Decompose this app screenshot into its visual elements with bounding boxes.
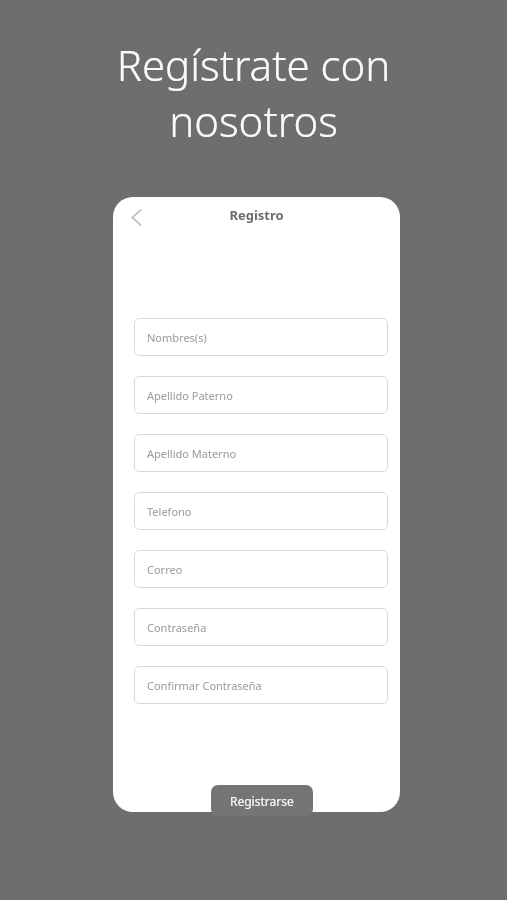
button[interactable]: Apellido Paterno [134,376,388,414]
staticText: Confirmar Contraseña [147,678,262,693]
button[interactable]: Back [116,197,156,237]
button[interactable]: Registrarse [211,785,313,816]
staticText: Contraseña [147,620,207,635]
staticText: Nombres(s) [147,330,207,345]
button[interactable]: Correo [134,550,388,588]
staticText: Apellido Materno [147,446,237,461]
button[interactable]: Nombres(s) [134,318,388,356]
button[interactable]: Apellido Materno [134,434,388,472]
staticText: Apellido Paterno [147,388,233,403]
staticText: Registrarse [230,793,294,809]
staticText: Registro [113,206,400,224]
staticText: Telefono [147,504,192,519]
button[interactable]: Contraseña [134,608,388,646]
staticText: Correo [147,562,183,577]
staticText: Regístrate con nosotros [0,36,507,149]
button[interactable]: Confirmar Contraseña [134,666,388,704]
button[interactable]: Telefono [134,492,388,530]
